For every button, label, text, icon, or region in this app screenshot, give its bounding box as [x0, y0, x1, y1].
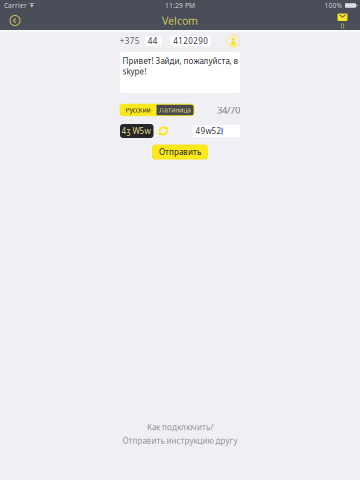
- button[interactable]: Отправить: [152, 144, 208, 159]
- staticText: 49w52: [195, 126, 221, 136]
- staticText: 4ʒ W5w: [121, 126, 150, 136]
- staticText: 44: [148, 36, 158, 46]
- staticText: 11:29 PM: [165, 1, 195, 10]
- staticText: Как подключить?: [147, 422, 213, 432]
- button[interactable]: Messages: [331, 11, 360, 30]
- staticText: +375: [120, 36, 140, 46]
- button[interactable]: Латиница: [156, 104, 194, 116]
- staticText: 100%: [324, 1, 342, 10]
- staticText: Velcom: [162, 13, 198, 28]
- staticText: Латиница: [159, 106, 191, 114]
- button[interactable]: Отправить инструкцию другу: [122, 435, 237, 446]
- staticText: 34/70: [217, 104, 240, 116]
- staticText: Русский: [126, 106, 151, 114]
- button[interactable]: Choose contact: [226, 34, 240, 48]
- staticText: Carrier: [4, 1, 27, 10]
- button[interactable]: Back: [0, 11, 28, 30]
- staticText: Отправить: [159, 147, 201, 157]
- button[interactable]: Как подключить?: [147, 422, 213, 432]
- staticText: 0: [340, 21, 344, 30]
- staticText: Привет! Зайди, пожалуйста, в skype!: [122, 55, 238, 77]
- button[interactable]: Русский: [120, 104, 156, 116]
- staticText: Отправить инструкцию другу: [122, 435, 237, 446]
- staticText: 4120290: [173, 36, 208, 46]
- button[interactable]: Refresh captcha: [157, 125, 169, 137]
